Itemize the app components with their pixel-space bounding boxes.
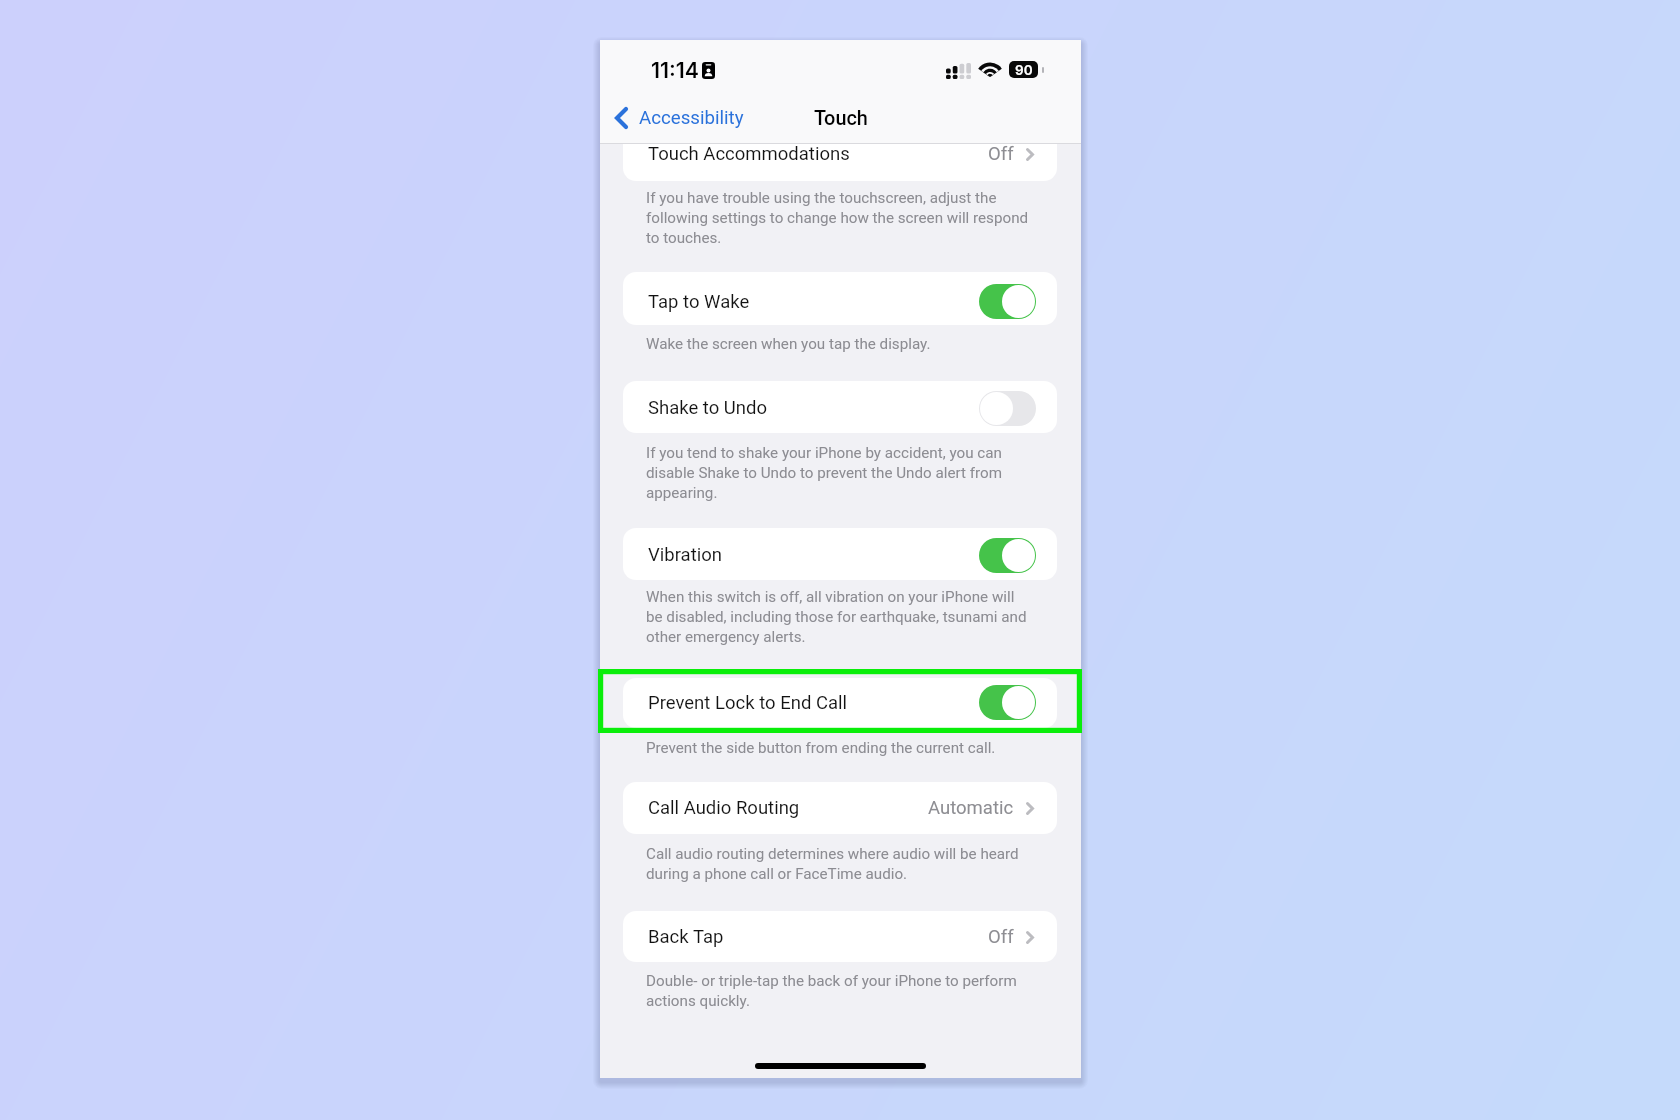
button[interactable]: Back Tap <box>623 911 1057 962</box>
staticText: 11:14 <box>651 57 699 83</box>
button[interactable]: Tap to Wake <box>979 284 1036 319</box>
staticText: Shake to Undo <box>648 397 768 419</box>
staticText: Off <box>988 926 1014 948</box>
staticText: Prevent Lock to End Call <box>648 692 848 714</box>
button[interactable]: Vibration <box>623 528 1057 580</box>
staticText: Double- or triple-tap the back of your i… <box>646 970 1030 1010</box>
button[interactable]: Prevent Lock to End Call <box>623 678 1057 728</box>
button[interactable]: Shake to Undo <box>979 391 1036 426</box>
staticText: 90 <box>1015 62 1033 78</box>
button[interactable]: Prevent Lock to End Call <box>979 685 1036 720</box>
staticText: When this switch is off, all vibration o… <box>646 586 1030 646</box>
button[interactable]: Call Audio Routing <box>623 782 1057 834</box>
staticText: If you have trouble using the touchscree… <box>646 187 1030 247</box>
staticText: Call audio routing determines where audi… <box>646 843 1030 883</box>
staticText: Vibration <box>648 544 722 566</box>
staticText: Back Tap <box>648 926 724 948</box>
staticText: Accessibility <box>639 107 744 129</box>
staticText: Prevent the side button from ending the … <box>646 737 996 757</box>
button[interactable]: Touch Accommodations <box>623 118 1057 181</box>
staticText: Off <box>988 143 1014 165</box>
staticText: Automatic <box>928 797 1014 819</box>
button[interactable]: Tap to Wake <box>623 272 1057 325</box>
button[interactable]: Shake to Undo <box>623 381 1057 433</box>
staticText: Wake the screen when you tap the display… <box>646 333 931 353</box>
staticText: Touch Accommodations <box>648 143 850 165</box>
staticText: If you tend to shake your iPhone by acci… <box>646 442 1030 502</box>
button[interactable]: Back to Accessibility <box>607 101 752 135</box>
staticText: Call Audio Routing <box>648 797 800 819</box>
staticText: Tap to Wake <box>648 291 750 313</box>
staticText: Touch <box>814 107 868 130</box>
button[interactable]: Vibration <box>979 538 1036 573</box>
